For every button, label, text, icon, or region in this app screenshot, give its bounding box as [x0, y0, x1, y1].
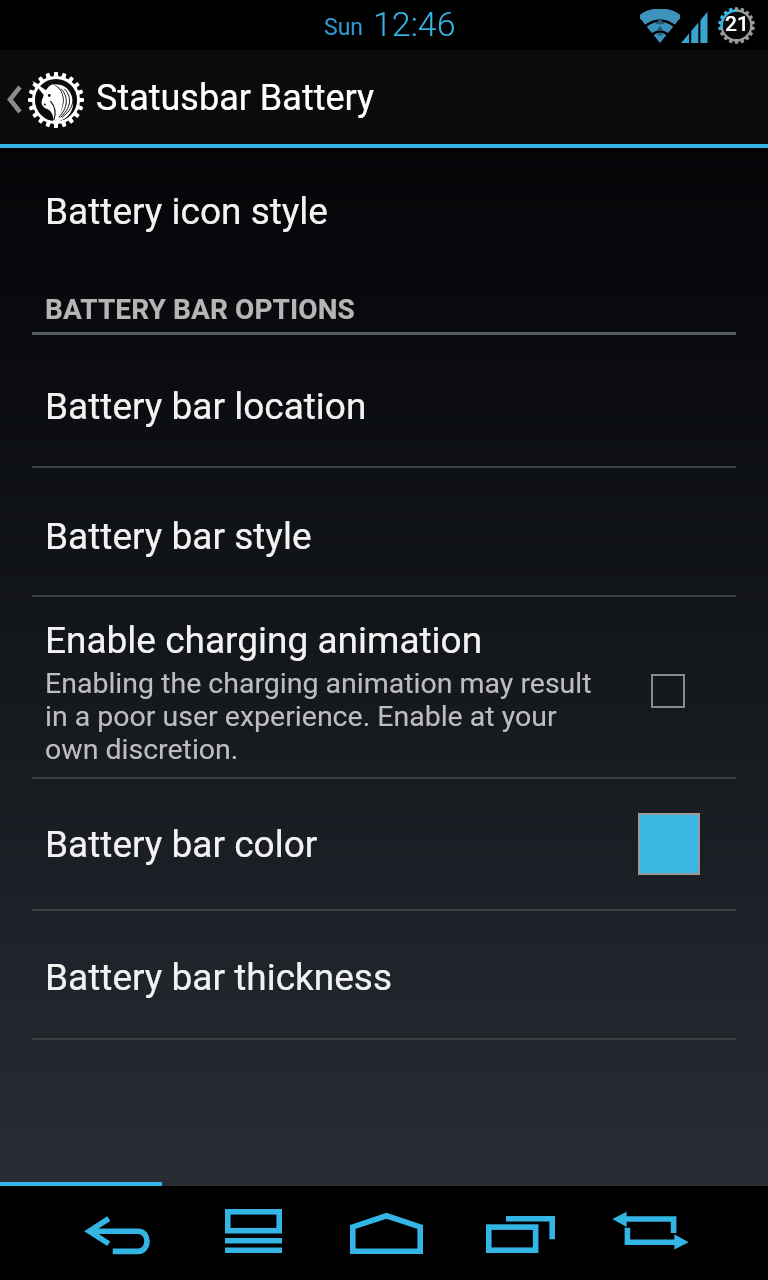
- staticText: Enabling the charging animation may resu…: [45, 667, 617, 766]
- button[interactable]: Battery bar color: [0, 779, 768, 909]
- button[interactable]: Home: [320, 1186, 452, 1280]
- button[interactable]: Enable charging animation: [0, 597, 768, 777]
- staticText: Battery icon style: [45, 190, 328, 233]
- staticText: Battery bar thickness: [45, 956, 393, 999]
- button[interactable]: Battery icon style: [0, 148, 768, 274]
- button[interactable]: Battery bar location: [0, 335, 768, 466]
- staticText: Battery bar style: [45, 515, 312, 558]
- button[interactable]: Rotate: [584, 1186, 716, 1280]
- staticText: BATTERY BAR OPTIONS: [45, 293, 355, 326]
- button[interactable]: Keyboard: [187, 1186, 319, 1280]
- staticText: Enable charging animation: [45, 619, 483, 662]
- staticText: Battery bar color: [45, 823, 638, 866]
- staticText: Sun: [324, 14, 364, 41]
- staticText: Statusbar Battery: [96, 77, 375, 119]
- staticText: 21: [725, 12, 749, 37]
- button[interactable]: Battery bar thickness: [0, 911, 768, 1038]
- button[interactable]: Battery bar style: [0, 468, 768, 595]
- button[interactable]: Recent apps: [454, 1186, 586, 1280]
- staticText: 12:46: [373, 4, 456, 44]
- button[interactable]: Back: [54, 1186, 186, 1280]
- button[interactable]: Navigate up: [0, 52, 96, 147]
- staticText: Battery bar location: [45, 385, 367, 428]
